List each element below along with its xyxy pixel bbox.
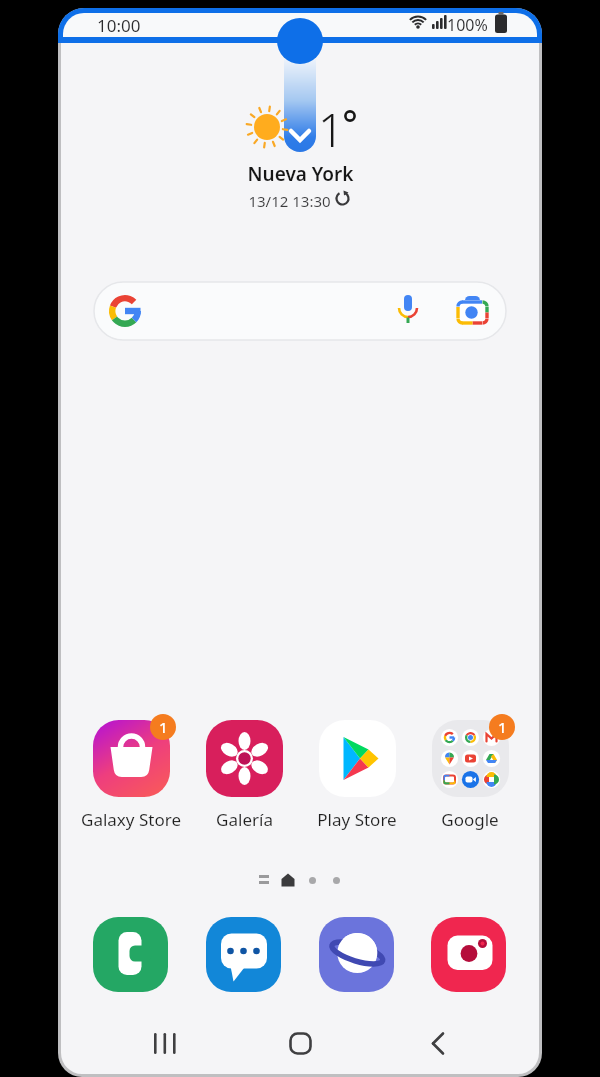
- button[interactable]: [431, 917, 506, 992]
- button[interactable]: [432, 720, 509, 797]
- button[interactable]: [152, 1032, 178, 1055]
- button[interactable]: [93, 720, 170, 797]
- staticText: 10:00: [97, 14, 141, 37]
- staticText: 13/12 13:30: [248, 191, 331, 211]
- staticText: Google: [441, 808, 499, 831]
- staticText: Galaxy Store: [81, 808, 181, 831]
- staticText: Nueva York: [247, 161, 354, 187]
- button[interactable]: [396, 294, 420, 326]
- button[interactable]: [430, 1032, 446, 1055]
- staticText: 100%: [447, 14, 488, 36]
- button[interactable]: [319, 720, 396, 797]
- button[interactable]: [455, 296, 491, 326]
- button[interactable]: [289, 1032, 312, 1055]
- staticText: 1: [159, 717, 168, 737]
- button[interactable]: [94, 282, 506, 340]
- button[interactable]: [206, 720, 283, 797]
- button[interactable]: [93, 917, 168, 992]
- staticText: 1: [318, 98, 345, 161]
- button[interactable]: [206, 917, 281, 992]
- staticText: 1: [498, 717, 507, 737]
- button[interactable]: [319, 917, 394, 992]
- button[interactable]: [240, 58, 360, 210]
- staticText: Play Store: [317, 808, 397, 831]
- staticText: Galería: [216, 808, 273, 831]
